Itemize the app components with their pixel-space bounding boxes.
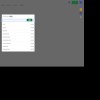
button[interactable]: Primary action <box>27 19 32 22</box>
